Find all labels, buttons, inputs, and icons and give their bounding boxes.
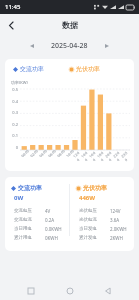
staticText: 2.0KWH bbox=[110, 226, 127, 232]
staticText: 2KWH bbox=[110, 235, 123, 241]
staticText: 0.1 bbox=[12, 133, 18, 138]
staticText: 14:00 bbox=[80, 149, 93, 162]
staticText: 12:00 bbox=[72, 149, 85, 162]
button[interactable]: Recents bbox=[23, 283, 39, 299]
button[interactable]: Back bbox=[2, 16, 20, 34]
staticText: 06:00 bbox=[47, 148, 57, 158]
staticText: 124V bbox=[110, 208, 121, 214]
staticText: 20:00 bbox=[104, 149, 117, 162]
staticText: 02:00 bbox=[29, 148, 39, 158]
button[interactable]: Back bbox=[100, 283, 116, 299]
staticText: 00:00 bbox=[20, 148, 30, 158]
staticText: 16:00 bbox=[88, 149, 101, 162]
staticText: 23:59 bbox=[120, 149, 133, 162]
staticText: 22:00 bbox=[112, 149, 125, 162]
staticText: 4V bbox=[45, 208, 51, 214]
button[interactable]: 光伏功率 bbox=[69, 65, 126, 73]
staticText: 0 bbox=[15, 145, 18, 150]
button[interactable]: 光伏功率 bbox=[76, 184, 130, 244]
staticText: 08:00 bbox=[56, 148, 66, 158]
staticText: 累计发电 bbox=[79, 235, 97, 241]
staticText: 交流功率 bbox=[20, 65, 44, 73]
staticText: 446W bbox=[79, 194, 96, 202]
button[interactable]: 交流功率 bbox=[11, 184, 65, 244]
staticText: 当日用电 bbox=[14, 226, 32, 232]
staticText: 10:00 bbox=[65, 148, 75, 158]
staticText: 11:45 bbox=[5, 3, 21, 11]
staticText: 0.2 bbox=[12, 122, 18, 127]
staticText: 光伏电流 bbox=[79, 217, 97, 223]
staticText: 交流电压 bbox=[14, 208, 32, 214]
staticText: 0.5 bbox=[12, 87, 18, 92]
staticText: 交流电流 bbox=[14, 217, 32, 223]
staticText: 光伏功率 bbox=[76, 65, 100, 73]
staticText: 数据 bbox=[62, 20, 78, 30]
staticText: 0.4 bbox=[12, 99, 18, 104]
staticText: 0.2A bbox=[45, 217, 55, 223]
button[interactable]: Next day bbox=[101, 40, 113, 52]
staticText: 0.3 bbox=[12, 110, 18, 115]
button[interactable]: 交流功率 bbox=[13, 65, 69, 73]
staticText: 当日发电 bbox=[79, 226, 97, 232]
button[interactable]: Home bbox=[62, 283, 78, 299]
staticText: 光伏功率 bbox=[83, 184, 107, 192]
staticText: 18:00 bbox=[96, 149, 109, 162]
staticText: 04:00 bbox=[38, 148, 48, 158]
staticText: 功率(KW) bbox=[11, 80, 28, 85]
staticText: 0W bbox=[14, 194, 24, 202]
staticText: 累计用电 bbox=[14, 235, 32, 241]
staticText: 光伏电压 bbox=[79, 208, 97, 214]
staticText: 0KWH bbox=[45, 235, 58, 241]
staticText: 交流功率 bbox=[18, 184, 42, 192]
staticText: 2025-04-28 bbox=[51, 41, 88, 51]
staticText: 3.6A bbox=[110, 217, 120, 223]
staticText: 0.0KWH bbox=[45, 226, 62, 232]
button[interactable]: Previous day bbox=[26, 40, 38, 52]
